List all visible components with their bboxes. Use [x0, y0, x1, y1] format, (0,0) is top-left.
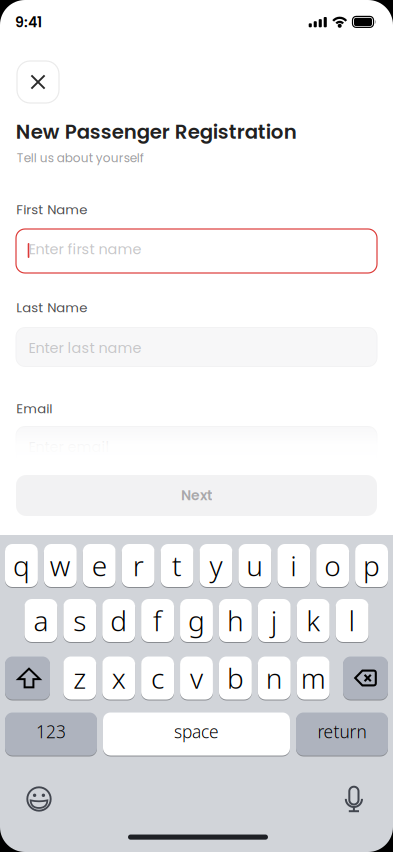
staticText: Email — [16, 399, 52, 418]
staticText: f — [153, 602, 162, 639]
button[interactable]: x — [102, 656, 135, 700]
button[interactable]: Delete — [343, 656, 388, 700]
staticText: n — [266, 659, 283, 697]
button[interactable]: Dictation — [345, 786, 363, 813]
staticText: 123 — [36, 720, 66, 743]
staticText: return — [317, 720, 366, 743]
staticText: First Name — [16, 200, 87, 219]
staticText: h — [227, 602, 244, 639]
staticText: w — [50, 547, 71, 584]
button[interactable]: f — [141, 598, 174, 642]
button[interactable]: y — [199, 543, 232, 587]
staticText: Enter first name — [28, 239, 141, 259]
button[interactable]: j — [258, 598, 291, 642]
staticText: x — [112, 659, 126, 697]
button[interactable]: g — [180, 598, 213, 642]
staticText: b — [227, 659, 244, 697]
button[interactable]: s — [63, 598, 96, 642]
staticText: d — [110, 602, 127, 639]
button[interactable]: b — [219, 656, 252, 700]
staticText: o — [324, 547, 341, 584]
staticText: New Passenger Registration — [16, 118, 297, 146]
staticText: y — [209, 547, 222, 584]
button[interactable]: a — [24, 598, 57, 642]
button[interactable]: t — [161, 543, 193, 587]
staticText: q — [13, 547, 30, 584]
staticText: c — [151, 659, 164, 697]
staticText: p — [363, 547, 380, 584]
staticText: s — [73, 602, 86, 639]
button[interactable]: Close — [17, 61, 59, 103]
staticText: Next — [181, 486, 212, 505]
button[interactable]: e — [83, 543, 116, 587]
staticText: Last Name — [16, 298, 87, 317]
staticText: m — [301, 659, 326, 697]
button[interactable]: v — [180, 656, 213, 700]
button[interactable]: space — [103, 712, 290, 756]
button[interactable]: return — [296, 712, 388, 756]
staticText: 9:41 — [15, 12, 42, 32]
staticText: g — [188, 602, 205, 639]
button[interactable]: z — [63, 656, 96, 700]
staticText: k — [306, 602, 320, 639]
button[interactable]: u — [238, 543, 271, 587]
button[interactable]: n — [258, 656, 291, 700]
button[interactable]: Emoji — [26, 786, 52, 812]
button[interactable]: c — [141, 656, 174, 700]
staticText: r — [133, 547, 144, 584]
staticText: v — [190, 659, 203, 697]
button[interactable]: q — [5, 543, 38, 587]
staticText: l — [349, 602, 356, 639]
button[interactable]: p — [355, 543, 388, 587]
staticText: Tell us about yourself — [17, 150, 144, 166]
staticText: Enter last name — [28, 338, 141, 358]
button[interactable]: o — [316, 543, 349, 587]
button[interactable]: l — [336, 598, 368, 642]
staticText: a — [33, 602, 48, 639]
staticText: z — [73, 659, 86, 697]
button[interactable]: r — [122, 543, 155, 587]
staticText: j — [271, 602, 278, 639]
staticText: u — [246, 547, 263, 584]
button[interactable]: Shift — [5, 656, 50, 700]
button[interactable]: i — [277, 543, 310, 587]
staticText: space — [174, 720, 219, 743]
button[interactable]: h — [219, 598, 252, 642]
staticText: e — [92, 547, 107, 584]
button[interactable]: 123 — [5, 712, 97, 756]
button[interactable]: w — [44, 543, 77, 587]
staticText: i — [290, 547, 297, 584]
button[interactable]: Enter first name — [16, 229, 377, 273]
button[interactable]: Enter last name — [16, 327, 377, 366]
staticText: t — [172, 547, 182, 584]
button[interactable]: d — [102, 598, 135, 642]
button[interactable]: m — [297, 656, 330, 700]
button[interactable]: Next — [16, 475, 377, 516]
button[interactable]: k — [297, 598, 330, 642]
